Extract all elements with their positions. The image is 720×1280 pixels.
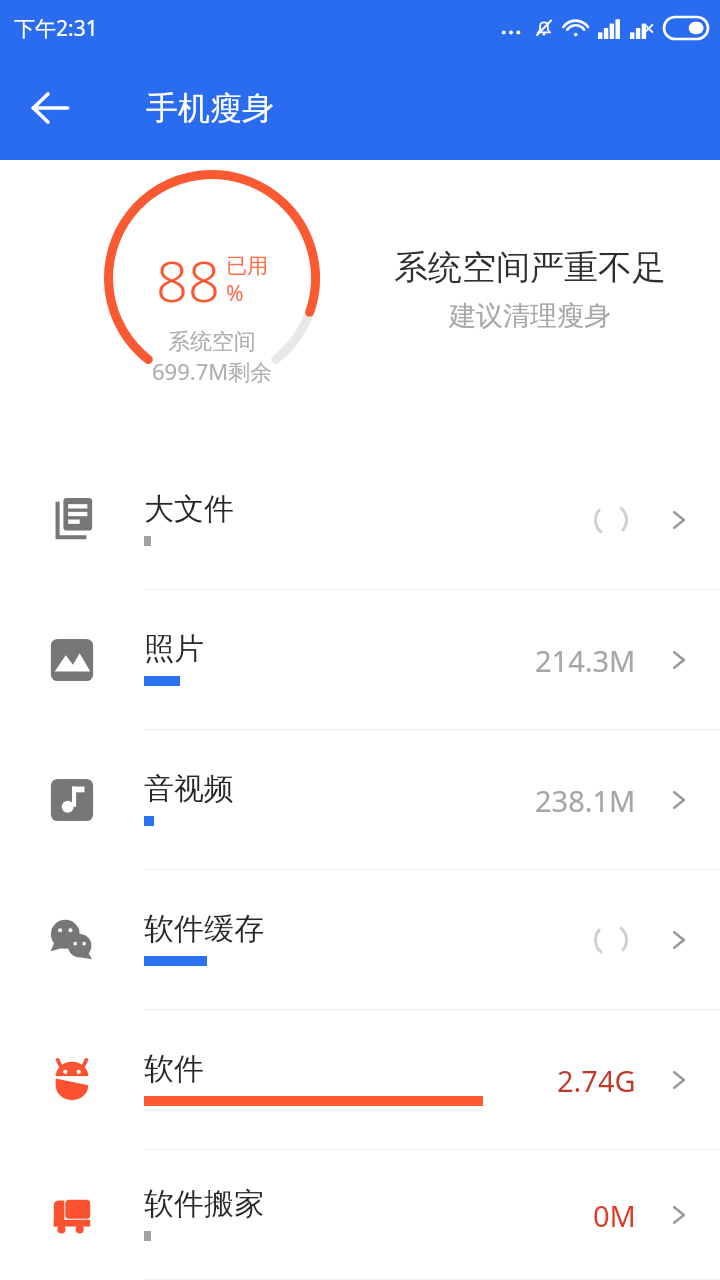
button[interactable]: 软件搬家 <box>0 1150 720 1280</box>
staticText: 音视频 <box>144 770 234 808</box>
staticText: % <box>226 279 244 308</box>
staticText: 软件搬家 <box>144 1185 264 1223</box>
button[interactable]: Back <box>24 82 76 134</box>
staticText: 大文件 <box>144 490 234 528</box>
staticText: 软件 <box>144 1050 204 1088</box>
button[interactable]: 音视频 <box>0 730 720 870</box>
staticText: 238.1M <box>535 781 636 820</box>
staticText: 699.7M剩余 <box>152 356 273 386</box>
staticText: 已用 <box>226 253 268 279</box>
staticText: 手机瘦身 <box>146 88 274 128</box>
staticText: 88 <box>156 242 220 318</box>
button[interactable]: 软件 <box>0 1010 720 1150</box>
button[interactable]: 大文件 <box>0 450 720 590</box>
staticText: 照片 <box>144 630 204 668</box>
staticText: 214.3M <box>535 641 636 680</box>
staticText: 下午2:31 <box>14 14 98 43</box>
staticText: 0M <box>593 1196 636 1235</box>
staticText: 建议清理瘦身 <box>449 299 611 333</box>
staticText: 系统空间 <box>168 328 256 356</box>
staticText: 系统空间严重不足 <box>394 246 666 289</box>
staticText: 2.74G <box>557 1061 636 1100</box>
staticText: 软件缓存 <box>144 910 264 948</box>
button[interactable]: 照片 <box>0 590 720 730</box>
button[interactable]: 软件缓存 <box>0 870 720 1010</box>
